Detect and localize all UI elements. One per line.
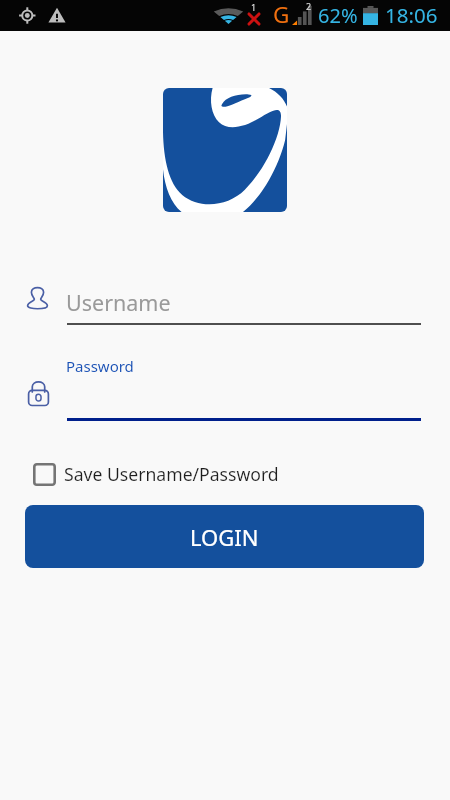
- staticText: Password: [66, 356, 134, 376]
- staticText: Save Username/Password: [64, 462, 279, 486]
- staticText: 18:06: [385, 1, 438, 29]
- button[interactable]: LOGIN: [25, 505, 424, 568]
- staticText: G: [273, 0, 290, 30]
- button[interactable]: Save Username/Password: [33, 462, 279, 486]
- staticText: 1: [251, 1, 257, 13]
- staticText: Username: [66, 288, 171, 317]
- staticText: LOGIN: [190, 522, 259, 552]
- staticText: 62%: [318, 2, 358, 29]
- staticText: 2: [306, 0, 312, 12]
